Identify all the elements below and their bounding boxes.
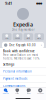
button[interactable]: Communications — [0, 83, 46, 90]
staticText: Search — [3, 93, 9, 94]
button[interactable]: Saved — [13, 33, 22, 40]
button[interactable]: Trips — [2, 33, 11, 40]
staticText: Free cancellation on most hotels. Member… — [3, 53, 40, 60]
button[interactable]: Trips — [11, 88, 23, 94]
button[interactable]: Search — [0, 88, 11, 94]
staticText: 9:41 — [5, 1, 12, 6]
staticText: Account — [37, 93, 43, 94]
staticText: Expedia — [13, 21, 33, 28]
staticText: ●●● — [36, 2, 42, 5]
staticText: One Key cash $0.00 — [9, 43, 36, 47]
staticText: One Key member — [11, 28, 34, 31]
button[interactable]: Personal information — [0, 68, 46, 75]
button[interactable]: Account — [34, 88, 46, 94]
button[interactable]: Alerts — [24, 33, 33, 40]
staticText: Trips — [5, 37, 9, 39]
staticText: Saved — [15, 37, 20, 39]
staticText: Alerts — [26, 37, 30, 39]
staticText: Trips — [15, 93, 19, 94]
staticText: Personal information — [3, 70, 32, 73]
staticText: Communications — [3, 84, 25, 88]
staticText: Inbox — [27, 93, 31, 94]
staticText: Book with confidence — [3, 49, 35, 53]
button[interactable]: More — [34, 33, 44, 40]
staticText: › — [41, 43, 42, 47]
staticText: More — [37, 37, 41, 39]
button[interactable]: Inbox — [23, 88, 34, 94]
button[interactable]: One Key cash $0.00 — [2, 42, 44, 48]
staticText: Payment methods — [3, 77, 27, 80]
staticText: Settings — [3, 63, 14, 66]
button[interactable]: Payment methods — [0, 75, 46, 83]
